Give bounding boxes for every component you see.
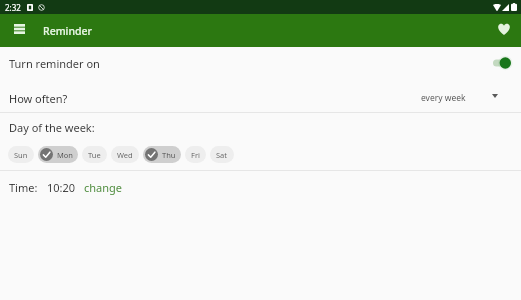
staticText: Tue xyxy=(88,150,101,160)
button[interactable]: Turn reminder on xyxy=(0,47,521,79)
button[interactable]: Tue xyxy=(82,146,107,163)
button[interactable]: Turn reminder on xyxy=(493,56,512,70)
button[interactable]: Favorite xyxy=(485,14,521,47)
button[interactable]: Sun xyxy=(8,146,34,163)
button[interactable]: Thu xyxy=(143,146,181,163)
button[interactable]: Open navigation drawer xyxy=(0,14,40,47)
staticText: Day of the week: xyxy=(9,120,95,135)
button[interactable]: Fri xyxy=(185,146,206,163)
staticText: Mon xyxy=(57,150,73,160)
button[interactable]: change xyxy=(84,180,123,195)
staticText: Time: xyxy=(9,180,38,195)
staticText: Wed xyxy=(117,150,133,160)
staticText: change xyxy=(84,180,123,195)
staticText: Fri xyxy=(191,150,200,160)
staticText: How often? xyxy=(9,91,68,106)
staticText: Sat xyxy=(216,150,228,160)
staticText: Thu xyxy=(162,150,176,160)
button[interactable]: Sat xyxy=(210,146,234,163)
staticText: Turn reminder on xyxy=(9,56,100,71)
staticText: 2:32 xyxy=(5,2,21,13)
staticText: 10:20 xyxy=(47,180,76,195)
button[interactable]: How often? xyxy=(0,79,521,112)
button[interactable]: Mon xyxy=(38,146,78,163)
button[interactable]: Wed xyxy=(111,146,139,163)
staticText: every week xyxy=(421,92,466,104)
staticText: Reminder xyxy=(43,24,93,38)
staticText: Sun xyxy=(14,150,28,160)
